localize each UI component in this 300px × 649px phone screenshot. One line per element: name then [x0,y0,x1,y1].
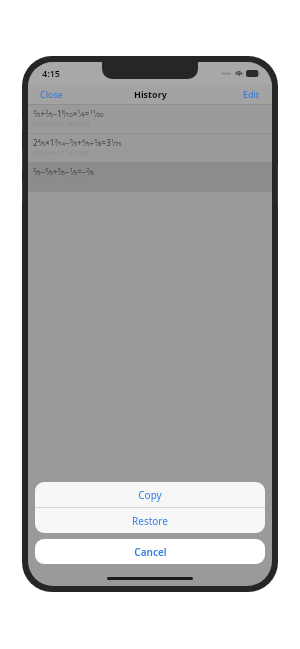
button[interactable]: Restore [35,508,265,533]
button[interactable]: 24⁄5×13⁄14−5⁄3+4⁄5÷5⁄8=31⁄75 [28,134,272,162]
button[interactable]: Edit [231,85,272,103]
staticText: Cancel [134,545,167,559]
staticText: Close [40,88,63,100]
button[interactable]: Close [28,85,75,103]
staticText: 2019-04-17 16:14:35 [33,120,90,128]
staticText: 2019-04-17 16:14:00 [33,149,90,157]
staticText: 24⁄5×13⁄14−5⁄3+4⁄5÷5⁄8=31⁄75 [33,137,122,148]
button[interactable]: Copy [35,482,265,507]
staticText: Copy [138,488,162,502]
staticText: Restore [132,514,168,528]
button[interactable]: Cancel [35,539,265,564]
staticText: History [134,88,167,100]
staticText: 2⁄5−6⁄5+3⁄5−1⁄5=−2⁄5 [33,166,94,177]
button[interactable]: 2⁄5−6⁄5+3⁄5−1⁄5=−2⁄5 [28,163,272,191]
staticText: 3⁄5+2⁄5−18⁄10×1⁄4=11⁄20 [33,108,104,119]
button[interactable]: 3⁄5+2⁄5−18⁄10×1⁄4=11⁄20 [28,105,272,133]
staticText: Edit [243,88,260,100]
staticText: 4:15 [42,67,60,79]
